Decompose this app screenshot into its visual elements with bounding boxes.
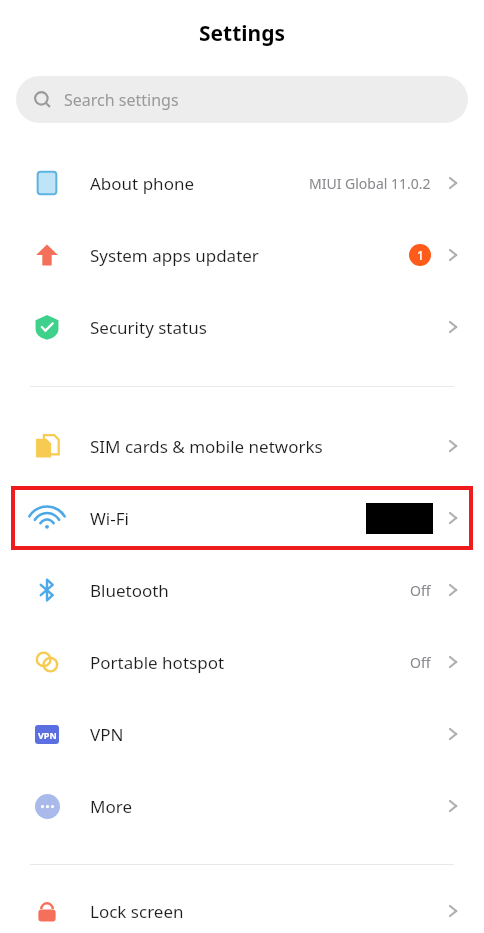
button[interactable]: SIM cards & mobile networks [0,410,484,482]
button[interactable]: System apps updater [0,219,484,291]
staticText: Search settings [64,89,179,111]
staticText: More [90,795,132,818]
staticText: VPN [38,729,57,741]
button[interactable]: Lock screen [0,889,484,933]
button[interactable]: About phone [0,147,484,219]
staticText: Lock screen [90,900,184,923]
staticText: About phone [90,172,195,195]
button[interactable]: Wi-Fi [0,482,484,554]
staticText: Portable hotspot [90,651,225,674]
button[interactable]: VPN [0,698,484,770]
staticText: Security status [90,316,207,339]
staticText: MIUI Global 11.0.2 [309,174,431,193]
button[interactable]: Search settings [16,76,468,123]
staticText: Wi-Fi [90,507,129,530]
staticText: System apps updater [90,244,259,267]
staticText: Off [410,581,431,600]
button[interactable]: Security status [0,291,484,363]
button[interactable]: More [0,770,484,842]
staticText: Settings [199,19,286,48]
staticText: 1 [417,247,424,263]
staticText: VPN [90,723,124,746]
staticText: SIM cards & mobile networks [90,435,323,458]
button[interactable]: Portable hotspot [0,626,484,698]
staticText: Off [410,653,431,672]
staticText: Bluetooth [90,579,169,602]
button[interactable]: Bluetooth [0,554,484,626]
